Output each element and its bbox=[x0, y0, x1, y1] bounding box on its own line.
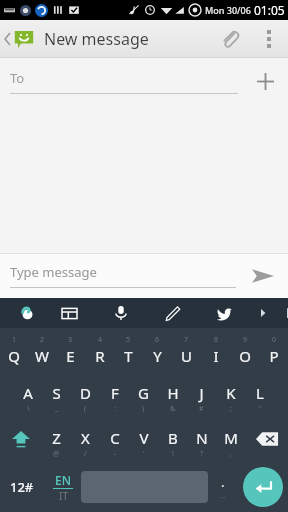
button[interactable]: B bbox=[158, 416, 187, 462]
staticText: X bbox=[81, 428, 90, 448]
staticText: To bbox=[10, 69, 25, 87]
button[interactable]: H bbox=[158, 372, 187, 416]
staticText: _ bbox=[55, 404, 59, 414]
button[interactable]: C bbox=[100, 416, 129, 462]
staticText: S bbox=[52, 383, 61, 403]
staticText: Y bbox=[153, 346, 162, 366]
staticText: C bbox=[110, 428, 120, 448]
button[interactable]: Expand toolbar bbox=[252, 302, 274, 324]
staticText: - bbox=[114, 449, 117, 459]
staticText: / bbox=[84, 449, 87, 459]
staticText: @ bbox=[53, 449, 60, 459]
button[interactable]: 2 bbox=[28, 328, 56, 372]
staticText: ) bbox=[142, 404, 145, 414]
staticText: 0 bbox=[272, 335, 277, 345]
staticText: V bbox=[139, 428, 149, 448]
staticText: ... bbox=[220, 491, 226, 501]
staticText: 01:05 bbox=[254, 2, 285, 18]
button[interactable]: N bbox=[187, 416, 216, 462]
staticText: F bbox=[111, 383, 119, 403]
staticText: IT bbox=[59, 489, 68, 503]
button[interactable]: F bbox=[100, 372, 129, 416]
staticText: 8 bbox=[214, 335, 219, 345]
button[interactable]: D bbox=[71, 372, 100, 416]
button[interactable]: X bbox=[71, 416, 100, 462]
button[interactable]: Twitter bbox=[212, 300, 238, 326]
button[interactable]: J bbox=[187, 372, 216, 416]
staticText: 7 bbox=[184, 335, 189, 345]
button[interactable]: Send bbox=[244, 257, 282, 295]
staticText: , bbox=[230, 449, 232, 459]
button[interactable]: Draw bbox=[160, 300, 186, 326]
staticText: 4 bbox=[98, 335, 103, 345]
staticText: D bbox=[80, 383, 91, 403]
staticText: ! bbox=[172, 449, 174, 459]
staticText: K bbox=[226, 383, 236, 403]
staticText: U bbox=[181, 346, 192, 366]
button[interactable]: Z bbox=[42, 416, 71, 462]
button[interactable]: 4 bbox=[85, 328, 114, 372]
button[interactable]: Navigate up bbox=[0, 20, 38, 58]
button[interactable]: Type message bbox=[10, 263, 236, 288]
staticText: 6 bbox=[155, 335, 160, 345]
button[interactable]: Attach bbox=[210, 20, 250, 58]
staticText: E bbox=[66, 346, 75, 366]
staticText: L bbox=[256, 383, 264, 403]
staticText: ' bbox=[143, 449, 145, 459]
button[interactable]: Handwriting bbox=[14, 300, 40, 326]
button[interactable]: Switch language bbox=[44, 462, 81, 512]
staticText: T bbox=[124, 346, 133, 366]
button[interactable]: L bbox=[245, 372, 274, 416]
staticText: # bbox=[199, 404, 204, 414]
button[interactable]: G bbox=[129, 372, 158, 416]
button[interactable]: 5 bbox=[114, 328, 143, 372]
button[interactable]: 6 bbox=[143, 328, 172, 372]
button[interactable]: K bbox=[216, 372, 245, 416]
button[interactable]: 12# bbox=[0, 462, 44, 512]
staticText: 2 bbox=[40, 335, 45, 345]
staticText: \ bbox=[27, 404, 30, 414]
button[interactable]: Voice input bbox=[108, 300, 134, 326]
staticText: : bbox=[114, 404, 116, 414]
staticText: EN bbox=[55, 472, 71, 488]
button[interactable]: V bbox=[129, 416, 158, 462]
staticText: P bbox=[269, 346, 279, 366]
button[interactable]: 7 bbox=[172, 328, 201, 372]
button[interactable]: To bbox=[10, 69, 238, 94]
button[interactable]: 0 bbox=[259, 328, 288, 372]
staticText: Mon 30/06 bbox=[205, 4, 251, 16]
button[interactable]: S bbox=[42, 372, 71, 416]
staticText: R bbox=[95, 346, 105, 366]
staticText: G bbox=[138, 383, 149, 403]
staticText: N bbox=[196, 428, 208, 448]
button[interactable]: 1 bbox=[0, 328, 28, 372]
staticText: M bbox=[224, 428, 238, 448]
button[interactable]: More options bbox=[250, 20, 288, 58]
button[interactable]: A bbox=[13, 372, 42, 416]
staticText: B bbox=[168, 428, 178, 448]
staticText: A bbox=[23, 383, 33, 403]
button[interactable]: M bbox=[216, 416, 245, 462]
button[interactable]: 9 bbox=[230, 328, 259, 372]
button[interactable]: Period bbox=[208, 462, 238, 512]
staticText: 12# bbox=[10, 478, 34, 496]
button[interactable]: Backspace bbox=[245, 416, 288, 462]
staticText: O bbox=[239, 346, 251, 366]
staticText: 3 bbox=[68, 335, 73, 345]
staticText: 5 bbox=[126, 335, 131, 345]
staticText: H bbox=[167, 383, 179, 403]
button[interactable]: 3 bbox=[56, 328, 85, 372]
staticText: ; bbox=[230, 404, 232, 414]
staticText: Q bbox=[8, 346, 20, 366]
staticText: J bbox=[199, 383, 204, 403]
staticText: Z bbox=[52, 428, 61, 448]
staticText: I bbox=[213, 346, 219, 366]
button[interactable]: Shift bbox=[0, 416, 42, 462]
staticText: 9 bbox=[243, 335, 248, 345]
button[interactable]: 8 bbox=[201, 328, 230, 372]
staticText: & bbox=[170, 404, 176, 414]
button[interactable]: Enter bbox=[242, 466, 284, 508]
button[interactable]: Add recipient bbox=[248, 64, 282, 98]
button[interactable]: Language bbox=[56, 300, 82, 326]
